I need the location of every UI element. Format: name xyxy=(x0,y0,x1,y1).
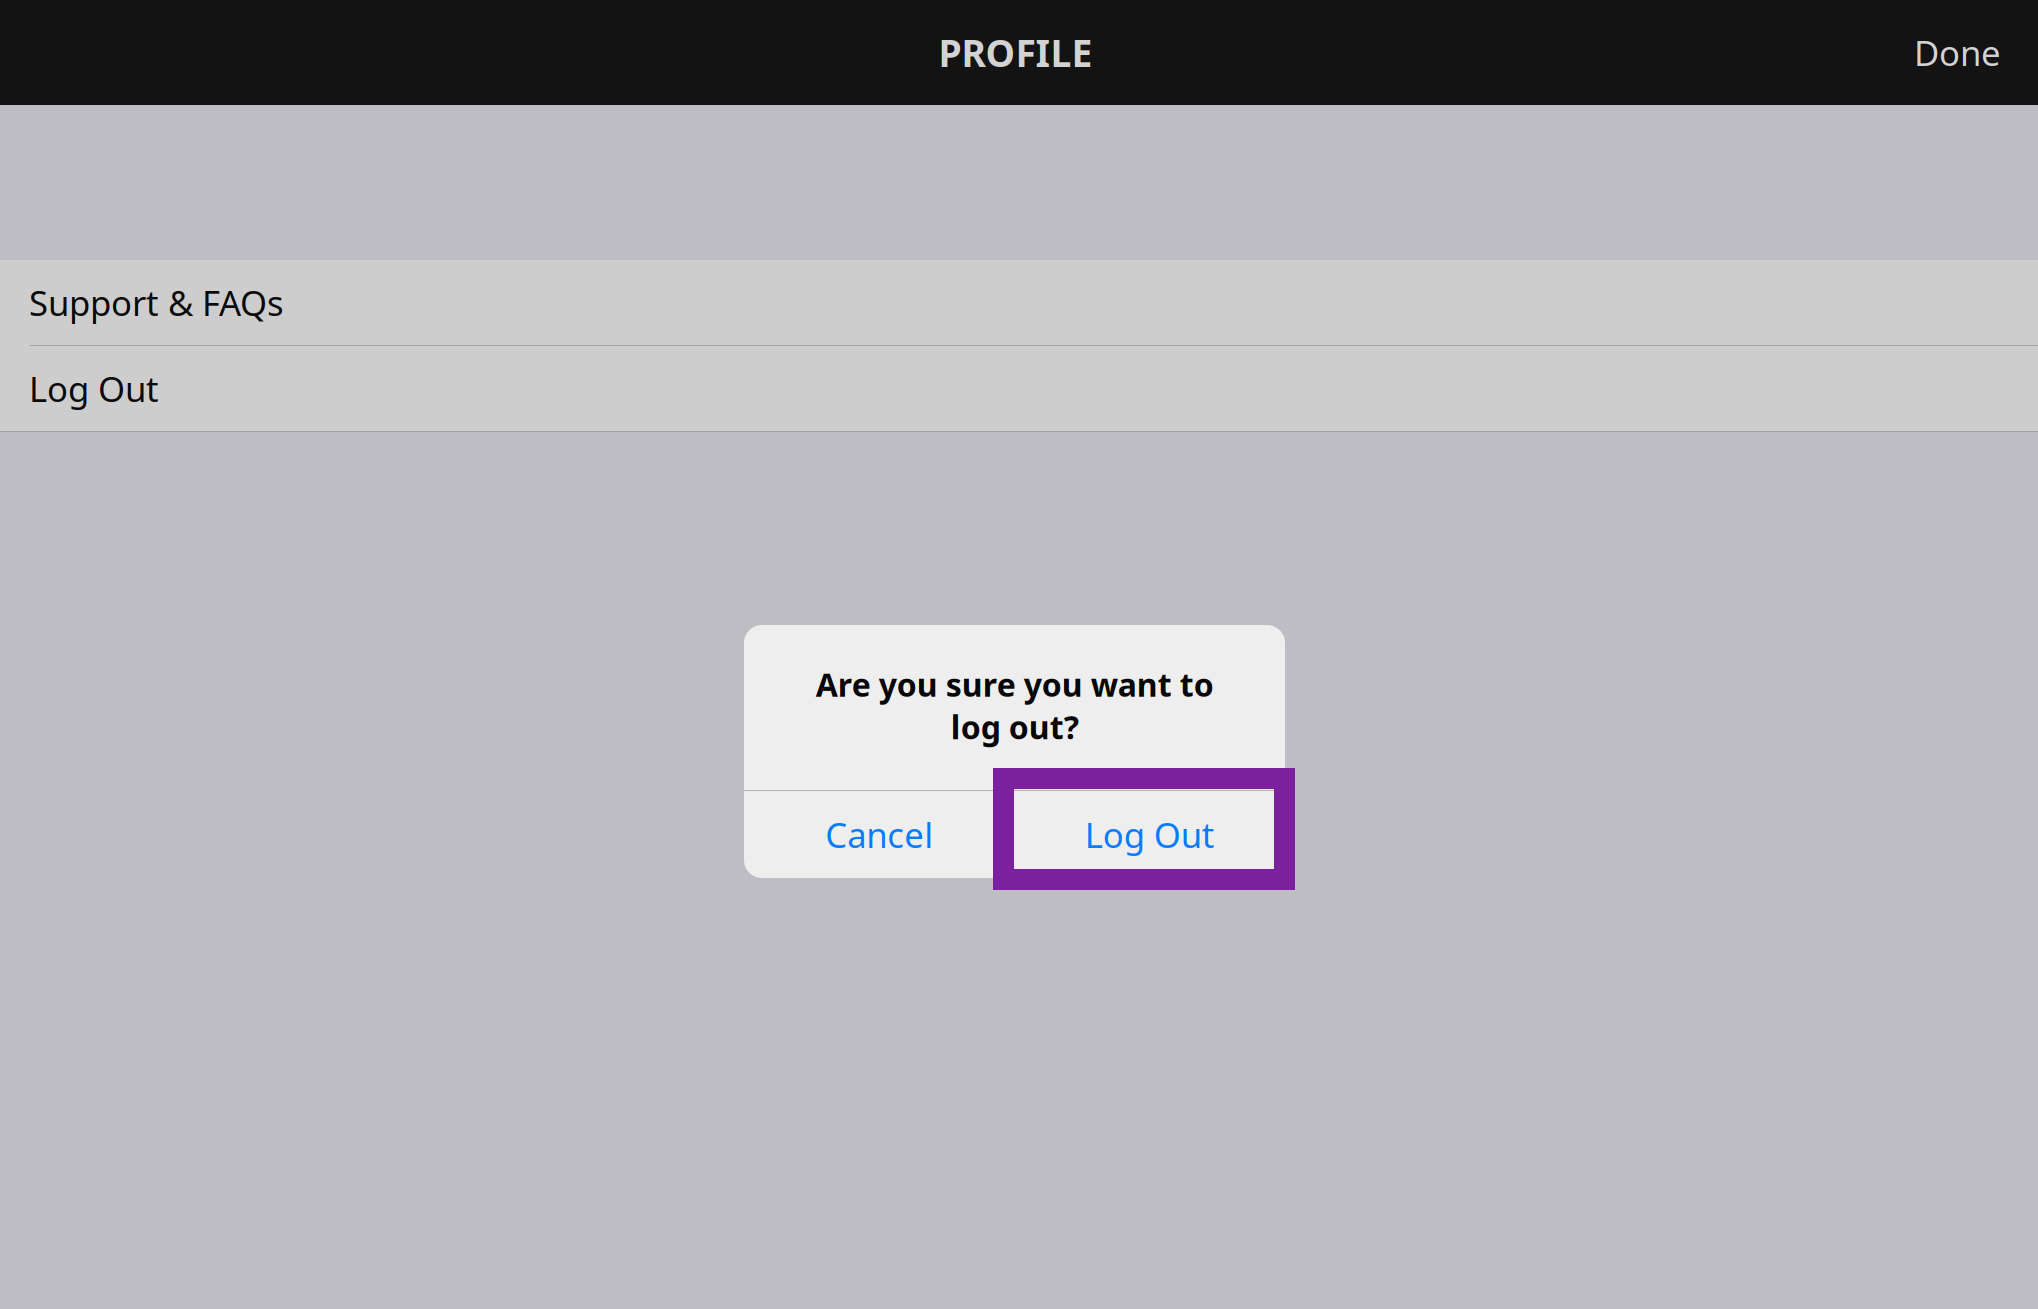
staticText: PROFILE xyxy=(938,28,1092,77)
staticText: Log Out xyxy=(1085,811,1215,857)
staticText: Cancel xyxy=(825,811,933,857)
button[interactable]: Log Out xyxy=(1014,791,1285,878)
staticText: Support & FAQs xyxy=(29,279,284,325)
staticText: Log Out xyxy=(29,365,159,411)
button[interactable]: Log Out xyxy=(0,346,2038,431)
button[interactable]: Done xyxy=(1914,29,2038,75)
staticText: Done xyxy=(1914,29,2001,75)
staticText: Are you sure you want to log out? xyxy=(815,663,1213,748)
button[interactable]: Cancel xyxy=(744,791,1014,878)
button[interactable]: Support & FAQs xyxy=(0,260,2038,345)
